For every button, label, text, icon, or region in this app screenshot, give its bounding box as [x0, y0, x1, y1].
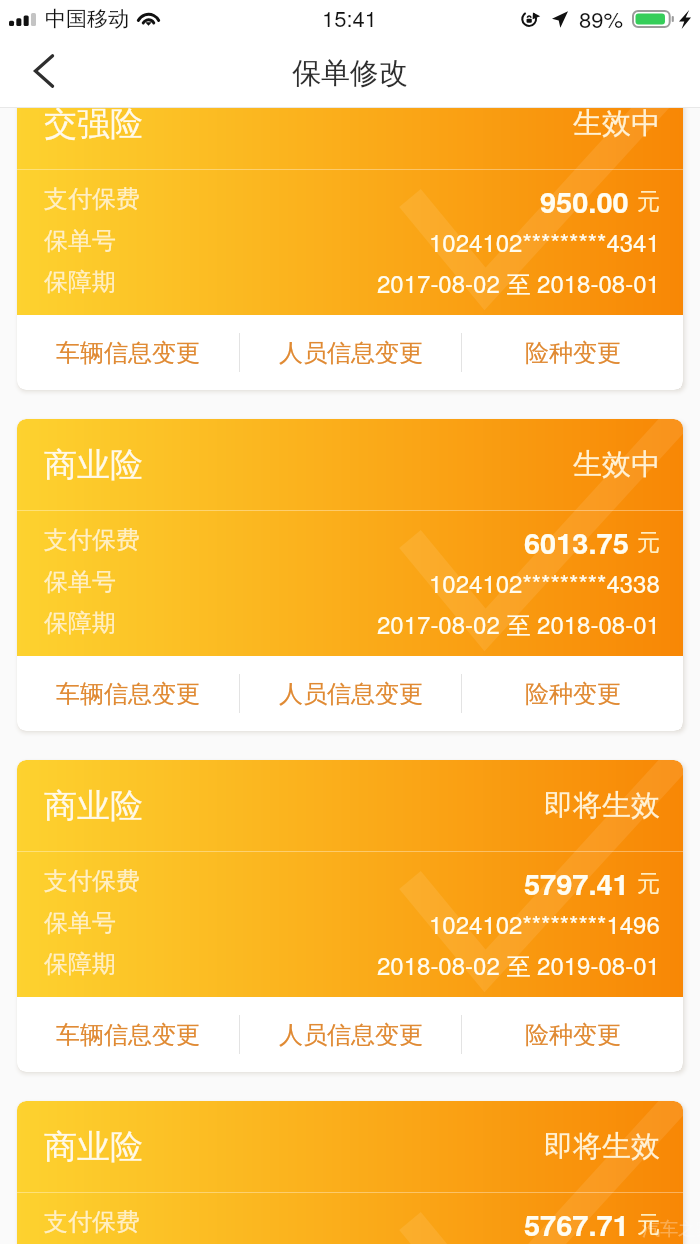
staticText: 元	[637, 1210, 660, 1239]
staticText: 生效中	[573, 446, 660, 483]
staticText: 5767.71	[524, 1203, 629, 1241]
staticText: 1024102*********4341	[429, 224, 660, 258]
staticText: 支付保费	[44, 525, 140, 555]
staticText: 6013.75	[524, 521, 629, 559]
staticText: 人员信息变更	[279, 1020, 423, 1050]
staticText: 商业险	[44, 444, 143, 486]
staticText: 支付保费	[44, 866, 140, 896]
button[interactable]: 人员信息变更	[240, 656, 461, 731]
staticText: 生效中	[573, 108, 660, 142]
staticText: 保障期	[44, 949, 116, 979]
button[interactable]: 车辆信息变更	[17, 656, 239, 731]
staticText: 交强险	[44, 108, 143, 145]
staticText: 保障期	[44, 267, 116, 297]
button[interactable]: 车辆信息变更	[17, 997, 239, 1072]
staticText: 1024102*********4338	[429, 565, 660, 599]
staticText: 汽车之家	[642, 1218, 700, 1241]
button[interactable]: 险种变更	[462, 315, 683, 390]
staticText: 2017-08-02 至 2018-08-01	[377, 265, 660, 300]
staticText: 保单修改	[292, 55, 408, 92]
staticText: 950.00	[540, 180, 629, 218]
staticText: 险种变更	[525, 679, 621, 709]
staticText: 保单号	[44, 567, 116, 597]
staticText: 15:41	[322, 2, 378, 34]
staticText: 人员信息变更	[279, 338, 423, 368]
staticText: 元	[637, 528, 660, 557]
button[interactable]: 险种变更	[462, 997, 683, 1072]
staticText: 元	[637, 869, 660, 898]
button[interactable]: Back	[0, 44, 70, 108]
staticText: 1024102*********1496	[429, 906, 660, 940]
staticText: 保单号	[44, 908, 116, 938]
staticText: 车辆信息变更	[56, 1020, 200, 1050]
staticText: 车辆信息变更	[56, 679, 200, 709]
staticText: 即将生效	[544, 1128, 660, 1165]
button[interactable]: 车辆信息变更	[17, 315, 239, 390]
staticText: 商业险	[44, 1126, 143, 1168]
button[interactable]: 人员信息变更	[240, 997, 461, 1072]
staticText: 2017-08-02 至 2018-08-01	[377, 606, 660, 641]
staticText: 人员信息变更	[279, 679, 423, 709]
staticText: 车辆信息变更	[56, 338, 200, 368]
staticText: 险种变更	[525, 1020, 621, 1050]
staticText: 商业险	[44, 785, 143, 827]
staticText: 支付保费	[44, 184, 140, 214]
staticText: 即将生效	[544, 787, 660, 824]
staticText: 保单号	[44, 226, 116, 256]
staticText: 支付保费	[44, 1207, 140, 1237]
staticText: 89%	[579, 3, 624, 35]
button[interactable]: 人员信息变更	[240, 315, 461, 390]
button[interactable]: 险种变更	[462, 656, 683, 731]
staticText: 2018-08-02 至 2019-08-01	[377, 947, 660, 982]
staticText: 保障期	[44, 608, 116, 638]
staticText: 险种变更	[525, 338, 621, 368]
staticText: 中国移动	[45, 6, 129, 32]
staticText: 元	[637, 187, 660, 216]
staticText: 5797.41	[524, 862, 629, 900]
